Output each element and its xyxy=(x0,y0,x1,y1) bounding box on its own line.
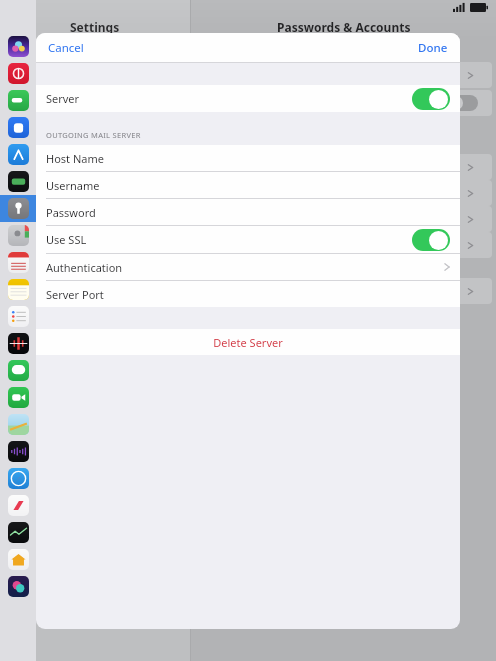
button[interactable]: On xyxy=(412,229,450,251)
button[interactable]: App 9 xyxy=(0,249,36,276)
staticText: Server xyxy=(46,91,80,106)
button[interactable]: Password xyxy=(36,199,460,225)
staticText: Use SSL xyxy=(46,232,87,247)
button[interactable]: App 4 xyxy=(0,114,36,141)
staticText: Password xyxy=(46,205,96,220)
button[interactable]: App 18 xyxy=(0,492,36,519)
button[interactable]: App 19 xyxy=(0,519,36,546)
staticText: Server Port xyxy=(46,287,104,302)
button[interactable]: Host Name xyxy=(36,145,460,171)
button[interactable]: App 10 xyxy=(0,276,36,303)
button[interactable]: App 16 xyxy=(0,438,36,465)
button[interactable]: Done xyxy=(410,36,456,60)
button[interactable]: App 6 xyxy=(0,168,36,195)
button[interactable]: Cancel xyxy=(40,36,92,60)
button[interactable]: App 2 xyxy=(0,60,36,87)
button[interactable]: App 14 xyxy=(0,384,36,411)
button[interactable]: App 5 xyxy=(0,141,36,168)
button[interactable]: App 20 xyxy=(0,546,36,573)
button[interactable]: App 15 xyxy=(0,411,36,438)
button[interactable]: App 8 xyxy=(0,222,36,249)
button[interactable]: Use SSL xyxy=(36,226,460,253)
staticText: Username xyxy=(46,178,100,193)
button[interactable]: App 12 xyxy=(0,330,36,357)
staticText: Cancel xyxy=(48,40,84,56)
button[interactable]: App 13 xyxy=(0,357,36,384)
button[interactable]: On xyxy=(412,88,450,110)
staticText: OUTGOING MAIL SERVER xyxy=(46,130,141,140)
button[interactable]: Username xyxy=(36,172,460,198)
button[interactable]: Server Port xyxy=(36,281,460,307)
button[interactable]: App 17 xyxy=(0,465,36,492)
staticText: Authentication xyxy=(46,260,123,275)
button[interactable]: App 11 xyxy=(0,303,36,330)
button[interactable]: App 1 xyxy=(0,33,36,60)
button[interactable]: Delete Server xyxy=(36,329,460,355)
staticText: Delete Server xyxy=(213,335,283,350)
button[interactable]: Server xyxy=(36,85,460,112)
staticText: Passwords & Accounts xyxy=(277,19,411,35)
button[interactable]: App 21 xyxy=(0,573,36,600)
button[interactable]: App 7 xyxy=(0,195,36,222)
staticText: Settings xyxy=(70,19,120,35)
button[interactable]: Authentication xyxy=(36,254,460,280)
button[interactable]: App 3 xyxy=(0,87,36,114)
staticText: Done xyxy=(418,40,448,56)
staticText: Host Name xyxy=(46,151,104,166)
